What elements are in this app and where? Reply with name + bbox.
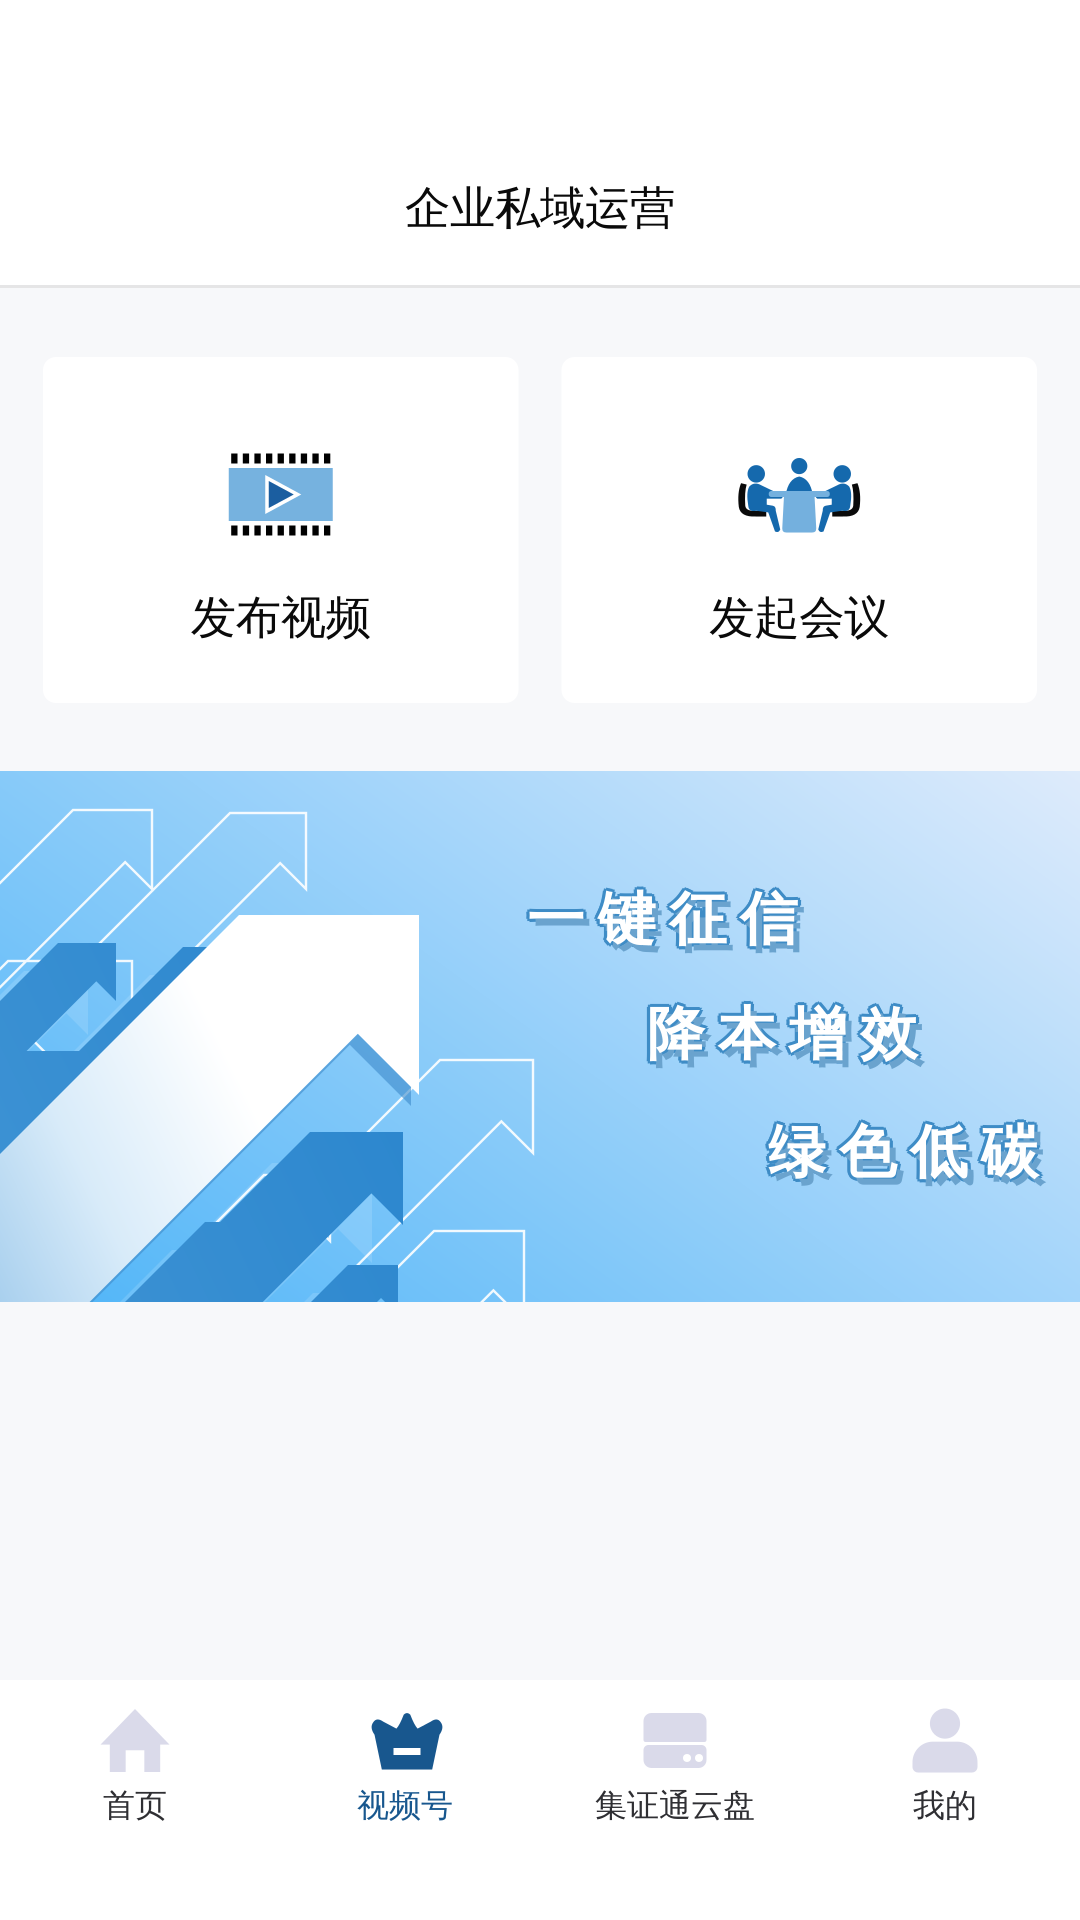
button[interactable]: 视频号 [270, 1680, 540, 1920]
staticText: 绿色低碳 [768, 1114, 1038, 1184]
staticText: 首页 [103, 1786, 167, 1825]
staticText: 降本增效 [649, 1002, 919, 1072]
staticText: 绿色低碳 [768, 1117, 1038, 1188]
button[interactable]: 发起会议 [561, 357, 1037, 703]
button[interactable]: 集证通云盘 [540, 1680, 810, 1920]
staticText: 降本增效 [650, 999, 920, 1070]
staticText: 绿色低碳 [770, 1115, 1040, 1185]
staticText: 一键征信 [527, 881, 797, 951]
staticText: 发布视频 [191, 590, 371, 646]
staticText: 一键征信 [533, 891, 803, 962]
staticText: 一键征信 [525, 882, 795, 952]
button[interactable]: 发布视频 [43, 357, 518, 703]
staticText: 降本增效 [644, 999, 914, 1070]
staticText: 绿色低碳 [766, 1120, 1036, 1190]
staticText: 绿色低碳 [774, 1124, 1044, 1195]
staticText: 集证通云盘 [595, 1786, 755, 1825]
staticText: 绿色低碳 [765, 1117, 1035, 1188]
button[interactable]: 我的 [810, 1680, 1080, 1920]
staticText: 一键征信 [529, 887, 799, 957]
staticText: 降本增效 [645, 997, 915, 1067]
staticText: 企业私域运营 [405, 181, 675, 236]
staticText: 降本增效 [647, 996, 917, 1066]
staticText: 降本增效 [647, 1002, 917, 1073]
staticText: 降本增效 [653, 1006, 923, 1077]
staticText: 降本增效 [647, 999, 917, 1070]
staticText: 一键征信 [527, 887, 797, 958]
staticText: 一键征信 [525, 887, 795, 957]
staticText: 降本增效 [645, 1002, 915, 1072]
staticText: 一键征信 [530, 884, 800, 955]
staticText: 发起会议 [709, 590, 889, 646]
staticText: 一键征信 [524, 884, 794, 955]
staticText: 绿色低碳 [768, 1120, 1038, 1191]
staticText: 我的 [913, 1786, 977, 1825]
staticText: 绿色低碳 [770, 1120, 1040, 1190]
staticText: 降本增效 [649, 997, 919, 1067]
button[interactable]: 首页 [0, 1680, 270, 1920]
staticText: 一键征信 [527, 884, 797, 955]
staticText: 视频号 [357, 1786, 453, 1825]
staticText: 绿色低碳 [771, 1117, 1041, 1188]
staticText: 绿色低碳 [766, 1115, 1036, 1185]
staticText: 一键征信 [529, 882, 799, 952]
